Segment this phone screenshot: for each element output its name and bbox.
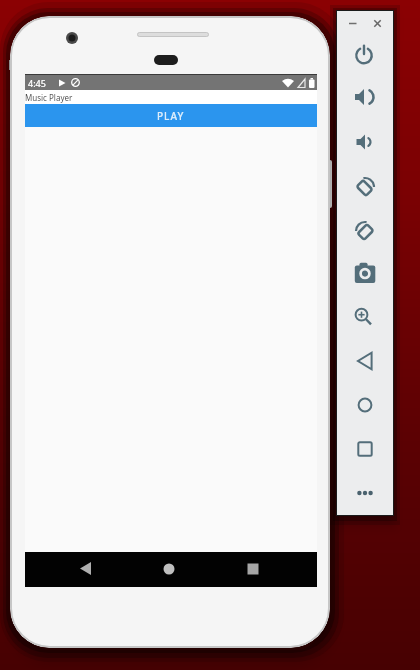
button[interactable]: [349, 19, 357, 27]
button[interactable]: [353, 261, 377, 285]
button[interactable]: PLAY: [25, 104, 317, 127]
button[interactable]: [374, 20, 381, 27]
button[interactable]: [352, 130, 376, 154]
button[interactable]: [353, 175, 377, 199]
button[interactable]: [353, 349, 377, 373]
button[interactable]: [352, 43, 376, 67]
button[interactable]: [79, 562, 92, 575]
button[interactable]: [351, 303, 375, 327]
button[interactable]: [163, 563, 175, 575]
button[interactable]: [247, 563, 259, 575]
button[interactable]: [353, 481, 377, 505]
staticText: 4:45: [28, 77, 46, 89]
staticText: Music Player: [25, 92, 73, 103]
button[interactable]: [353, 219, 377, 243]
button[interactable]: [353, 85, 377, 109]
button[interactable]: [353, 393, 377, 417]
button[interactable]: [353, 437, 377, 461]
staticText: PLAY: [157, 109, 185, 123]
